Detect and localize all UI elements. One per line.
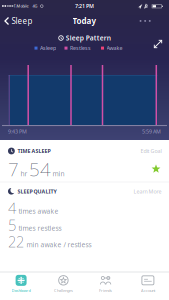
staticText: 5 xyxy=(8,215,16,235)
staticText: times awake xyxy=(18,207,58,216)
button[interactable]: Sleep xyxy=(4,14,38,28)
staticText: Restless xyxy=(70,44,91,52)
button[interactable]: Dashboard xyxy=(1,271,41,297)
staticText: Today xyxy=(72,16,96,26)
staticText: Awake xyxy=(106,44,122,52)
button[interactable]: Expand chart xyxy=(152,38,163,49)
staticText: TIME ASLEEP xyxy=(17,147,50,155)
button[interactable]: Friends xyxy=(86,271,126,297)
staticText: Dashboard xyxy=(12,288,31,293)
staticText: 22 xyxy=(8,232,24,251)
staticText: 54 xyxy=(29,157,51,181)
staticText: Learn More xyxy=(133,188,161,195)
staticText: 4 xyxy=(8,198,16,218)
button[interactable]: Account xyxy=(128,271,168,297)
staticText: hr xyxy=(20,169,27,178)
staticText: 4G xyxy=(32,3,37,9)
button[interactable]: Edit Goal xyxy=(121,147,161,155)
staticText: SLEEP QUALITY xyxy=(17,188,56,195)
staticText: Friends xyxy=(99,288,112,293)
staticText: Account xyxy=(141,288,155,293)
staticText: T-Mobile xyxy=(13,3,28,9)
button[interactable]: Learn More xyxy=(117,188,161,195)
staticText: 9:43 PM xyxy=(8,128,27,135)
staticText: Challenges xyxy=(54,288,73,293)
staticText: 7:21 PM xyxy=(75,2,94,10)
staticText: 5:59 AM xyxy=(142,128,161,135)
staticText: 7 xyxy=(8,157,19,181)
staticText: Sleep xyxy=(11,16,32,26)
staticText: Sleep Pattern xyxy=(66,34,111,42)
staticText: times restless xyxy=(18,224,61,233)
staticText: min awake / restless xyxy=(26,240,91,249)
button[interactable]: Challenges xyxy=(43,271,83,297)
staticText: Edit Goal xyxy=(140,147,161,155)
staticText: min xyxy=(52,169,64,178)
staticText: Asleep xyxy=(40,44,56,52)
